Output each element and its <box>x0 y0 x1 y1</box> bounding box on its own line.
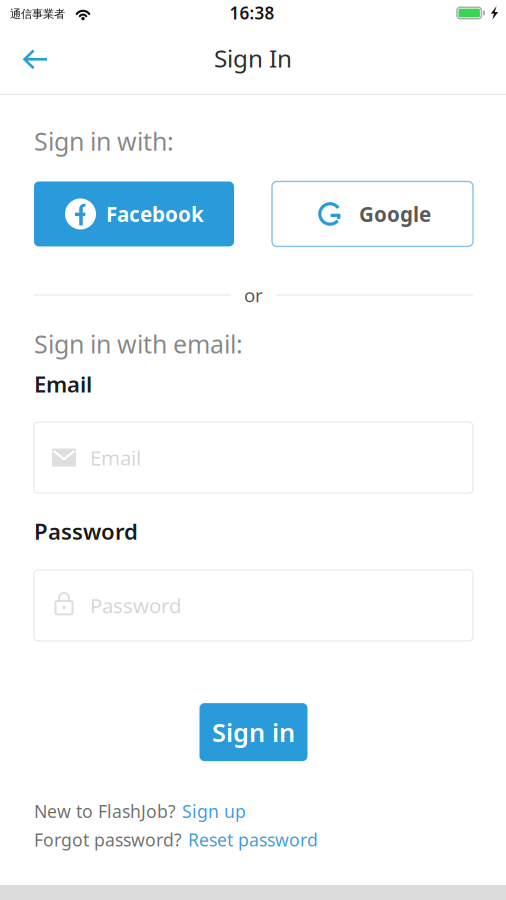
staticText: 16:38 <box>229 1 274 25</box>
staticText: Email <box>34 369 92 399</box>
staticText: Sign in with email: <box>34 327 243 361</box>
staticText: Password <box>34 516 138 546</box>
staticText: Sign in with: <box>34 124 174 158</box>
staticText: or <box>244 282 263 308</box>
staticText: Reset password <box>188 828 318 852</box>
button[interactable]: Reset password <box>188 828 318 852</box>
button[interactable]: Google <box>272 181 473 246</box>
button[interactable]: Sign in <box>199 703 307 761</box>
staticText: Sign up <box>182 799 246 823</box>
button[interactable]: Facebook <box>34 181 234 246</box>
staticText: Forgot password? <box>34 828 182 852</box>
button[interactable]: Sign up <box>182 799 246 823</box>
staticText: Sign in <box>212 715 295 749</box>
staticText: 通信事業者 <box>10 7 65 21</box>
staticText: Facebook <box>106 200 204 228</box>
staticText: Password <box>90 591 182 619</box>
staticText: Google <box>359 200 431 228</box>
staticText: Sign In <box>214 41 292 75</box>
staticText: Email <box>90 444 141 471</box>
button[interactable]: Back <box>0 40 68 83</box>
staticText: New to FlashJob? <box>34 799 176 823</box>
